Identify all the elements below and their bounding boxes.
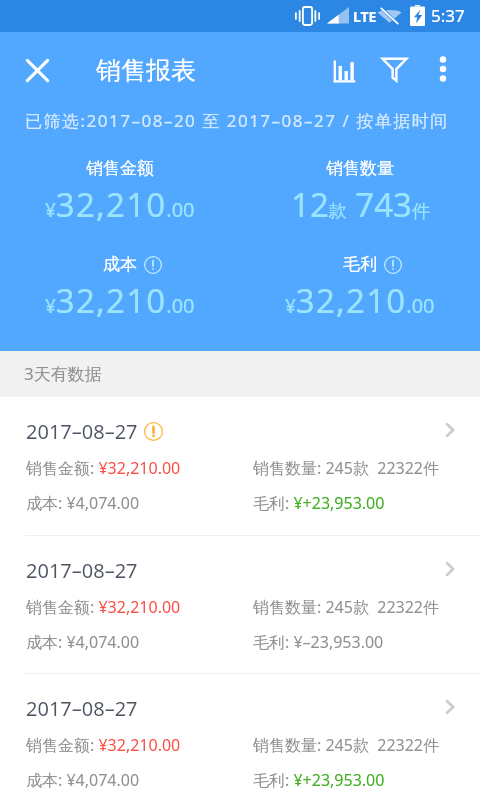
staticText: 成本: [103, 254, 137, 275]
staticText: 5:37: [431, 4, 465, 27]
staticText: 2017–08–27: [26, 695, 138, 722]
staticText: 销售金额: ¥32,210.00: [26, 457, 253, 479]
staticText: 毛利: ¥–23,953.00: [253, 631, 384, 653]
button[interactable]: 2017–08–27: [0, 397, 480, 535]
staticText: 毛利: [343, 254, 377, 275]
staticText: 销售数量: 245款 22322件: [253, 596, 439, 618]
button[interactable]: Close: [15, 48, 59, 92]
staticText: 2017–08–27: [26, 557, 138, 584]
staticText: 销售数量: [326, 158, 394, 179]
staticText: 毛利: ¥+23,953.00: [253, 769, 385, 791]
staticText: 已筛选:2017–08–20 至 2017–08–27 / 按单据时间: [25, 109, 449, 132]
button[interactable]: 2017–08–27: [0, 674, 480, 800]
staticText: 销售金额: ¥32,210.00: [26, 596, 253, 618]
staticText: 销售报表: [96, 55, 196, 86]
staticText: 销售数量: 245款 22322件: [253, 457, 439, 479]
staticText: ¥32,210.00: [285, 278, 435, 323]
staticText: LTE: [353, 7, 377, 26]
button[interactable]: More options: [420, 46, 465, 91]
staticText: 毛利: ¥+23,953.00: [253, 492, 385, 514]
staticText: 12款 743件: [291, 182, 430, 227]
staticText: 3天有数据: [24, 362, 102, 385]
staticText: 销售数量: 245款 22322件: [253, 734, 439, 756]
staticText: 销售金额: ¥32,210.00: [26, 734, 253, 756]
button[interactable]: Chart report: [321, 47, 367, 93]
staticText: 销售金额: [86, 158, 154, 179]
button[interactable]: Filter: [371, 45, 417, 91]
staticText: ¥32,210.00: [45, 182, 195, 227]
staticText: 成本: ¥4,074.00: [26, 492, 253, 514]
staticText: 成本: ¥4,074.00: [26, 769, 253, 791]
staticText: 成本: ¥4,074.00: [26, 631, 253, 653]
staticText: ¥32,210.00: [45, 278, 195, 323]
button[interactable]: 2017–08–27: [0, 536, 480, 673]
staticText: 2017–08–27: [26, 418, 138, 445]
